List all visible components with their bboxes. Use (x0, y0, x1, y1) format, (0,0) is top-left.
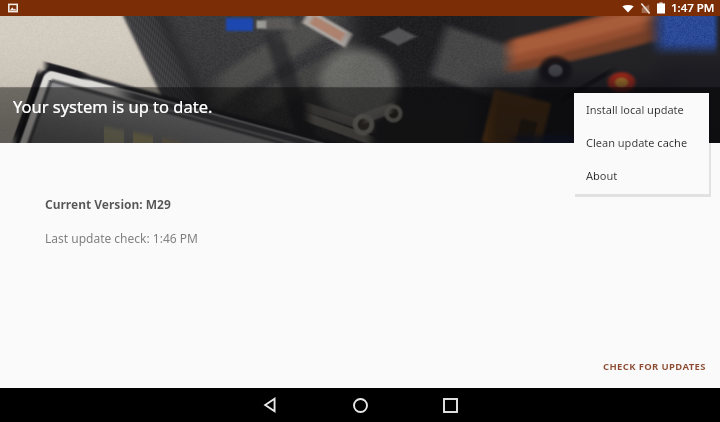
staticText: Install local update (586, 102, 684, 117)
staticText: Your system is up to date. (13, 95, 213, 117)
button[interactable]: Back (246, 388, 294, 422)
staticText: 1:47 PM (671, 0, 715, 16)
staticText: Last update check: 1:46 PM (45, 230, 198, 246)
button[interactable]: CHECK FOR UPDATES (594, 354, 715, 379)
staticText: Clean update cache (586, 135, 688, 150)
staticText: About (586, 168, 618, 183)
button[interactable]: About (574, 159, 709, 192)
button[interactable]: Install local update (574, 93, 709, 126)
button[interactable]: Home (336, 388, 384, 422)
staticText: CHECK FOR UPDATES (603, 360, 706, 373)
button[interactable]: Clean update cache (574, 126, 709, 159)
staticText: Current Version: M29 (45, 196, 171, 212)
button[interactable]: Recent apps (426, 388, 474, 422)
